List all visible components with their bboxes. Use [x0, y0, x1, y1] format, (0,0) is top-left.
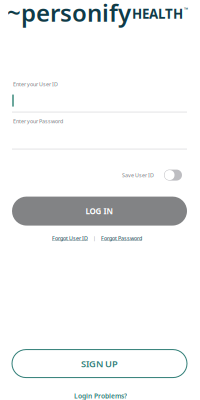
- staticText: Enter your Password: [13, 118, 63, 125]
- button[interactable]: Forgot Password: [101, 235, 142, 242]
- staticText: ~personify: [7, 0, 131, 28]
- button[interactable]: Forgot User ID: [52, 235, 88, 242]
- button[interactable]: LOG IN: [12, 197, 187, 226]
- staticText: Save User ID: [122, 171, 154, 179]
- staticText: LOG IN: [85, 206, 113, 216]
- staticText: Enter your User ID: [13, 81, 58, 88]
- button[interactable]: Login Problems?: [74, 392, 127, 400]
- staticText: Login Problems?: [74, 392, 127, 400]
- staticText: HEALTH: [132, 5, 183, 22]
- staticText: Forgot User ID: [52, 235, 88, 242]
- staticText: |: [93, 235, 96, 242]
- staticText: Forgot Password: [101, 235, 142, 242]
- staticText: SIGN UP: [81, 357, 118, 370]
- button[interactable]: Save User ID: [164, 170, 182, 181]
- button[interactable]: SIGN UP: [12, 350, 187, 378]
- staticText: ™: [184, 6, 188, 13]
